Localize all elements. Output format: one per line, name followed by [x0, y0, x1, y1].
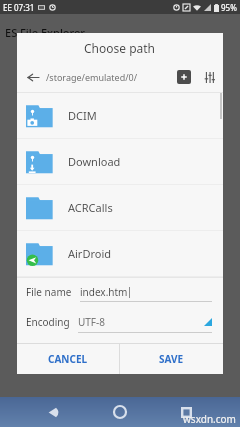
staticText: Encoding	[26, 315, 70, 329]
staticText: 95%	[221, 2, 237, 13]
staticText: Download	[68, 154, 121, 169]
button[interactable]: ACRCalls	[17, 185, 223, 230]
staticText: index.htm	[80, 285, 128, 299]
button[interactable]: New folder	[177, 70, 191, 84]
staticText: DCIM	[68, 108, 97, 123]
button[interactable]: Encoding selector	[78, 311, 212, 333]
button[interactable]: AirDroid	[17, 231, 223, 276]
staticText: ES File Explorer	[5, 25, 85, 40]
staticText: SAVE	[159, 352, 184, 366]
button[interactable]: Recent apps	[174, 400, 198, 424]
button[interactable]: Download	[17, 139, 223, 184]
button[interactable]: DCIM	[17, 93, 223, 138]
staticText: CANCEL	[48, 352, 88, 366]
button[interactable]: SAVE	[120, 344, 223, 374]
staticText: AirDroid	[68, 246, 112, 261]
staticText: File name	[26, 285, 72, 299]
staticText: EE 07:31	[3, 2, 35, 13]
button[interactable]: Back	[42, 400, 66, 424]
staticText: UTF-8	[78, 315, 105, 329]
staticText: Choose path	[84, 40, 156, 56]
button[interactable]: Up one level	[24, 68, 42, 86]
staticText: ACRCalls	[68, 200, 113, 215]
staticText: /storage/emulated/0/	[46, 71, 138, 83]
staticText: wsxdn.com	[183, 412, 236, 426]
button[interactable]: Home	[108, 400, 132, 424]
button[interactable]: Sort	[202, 70, 216, 84]
button[interactable]: index.htm	[80, 282, 212, 302]
button[interactable]: CANCEL	[17, 344, 119, 374]
